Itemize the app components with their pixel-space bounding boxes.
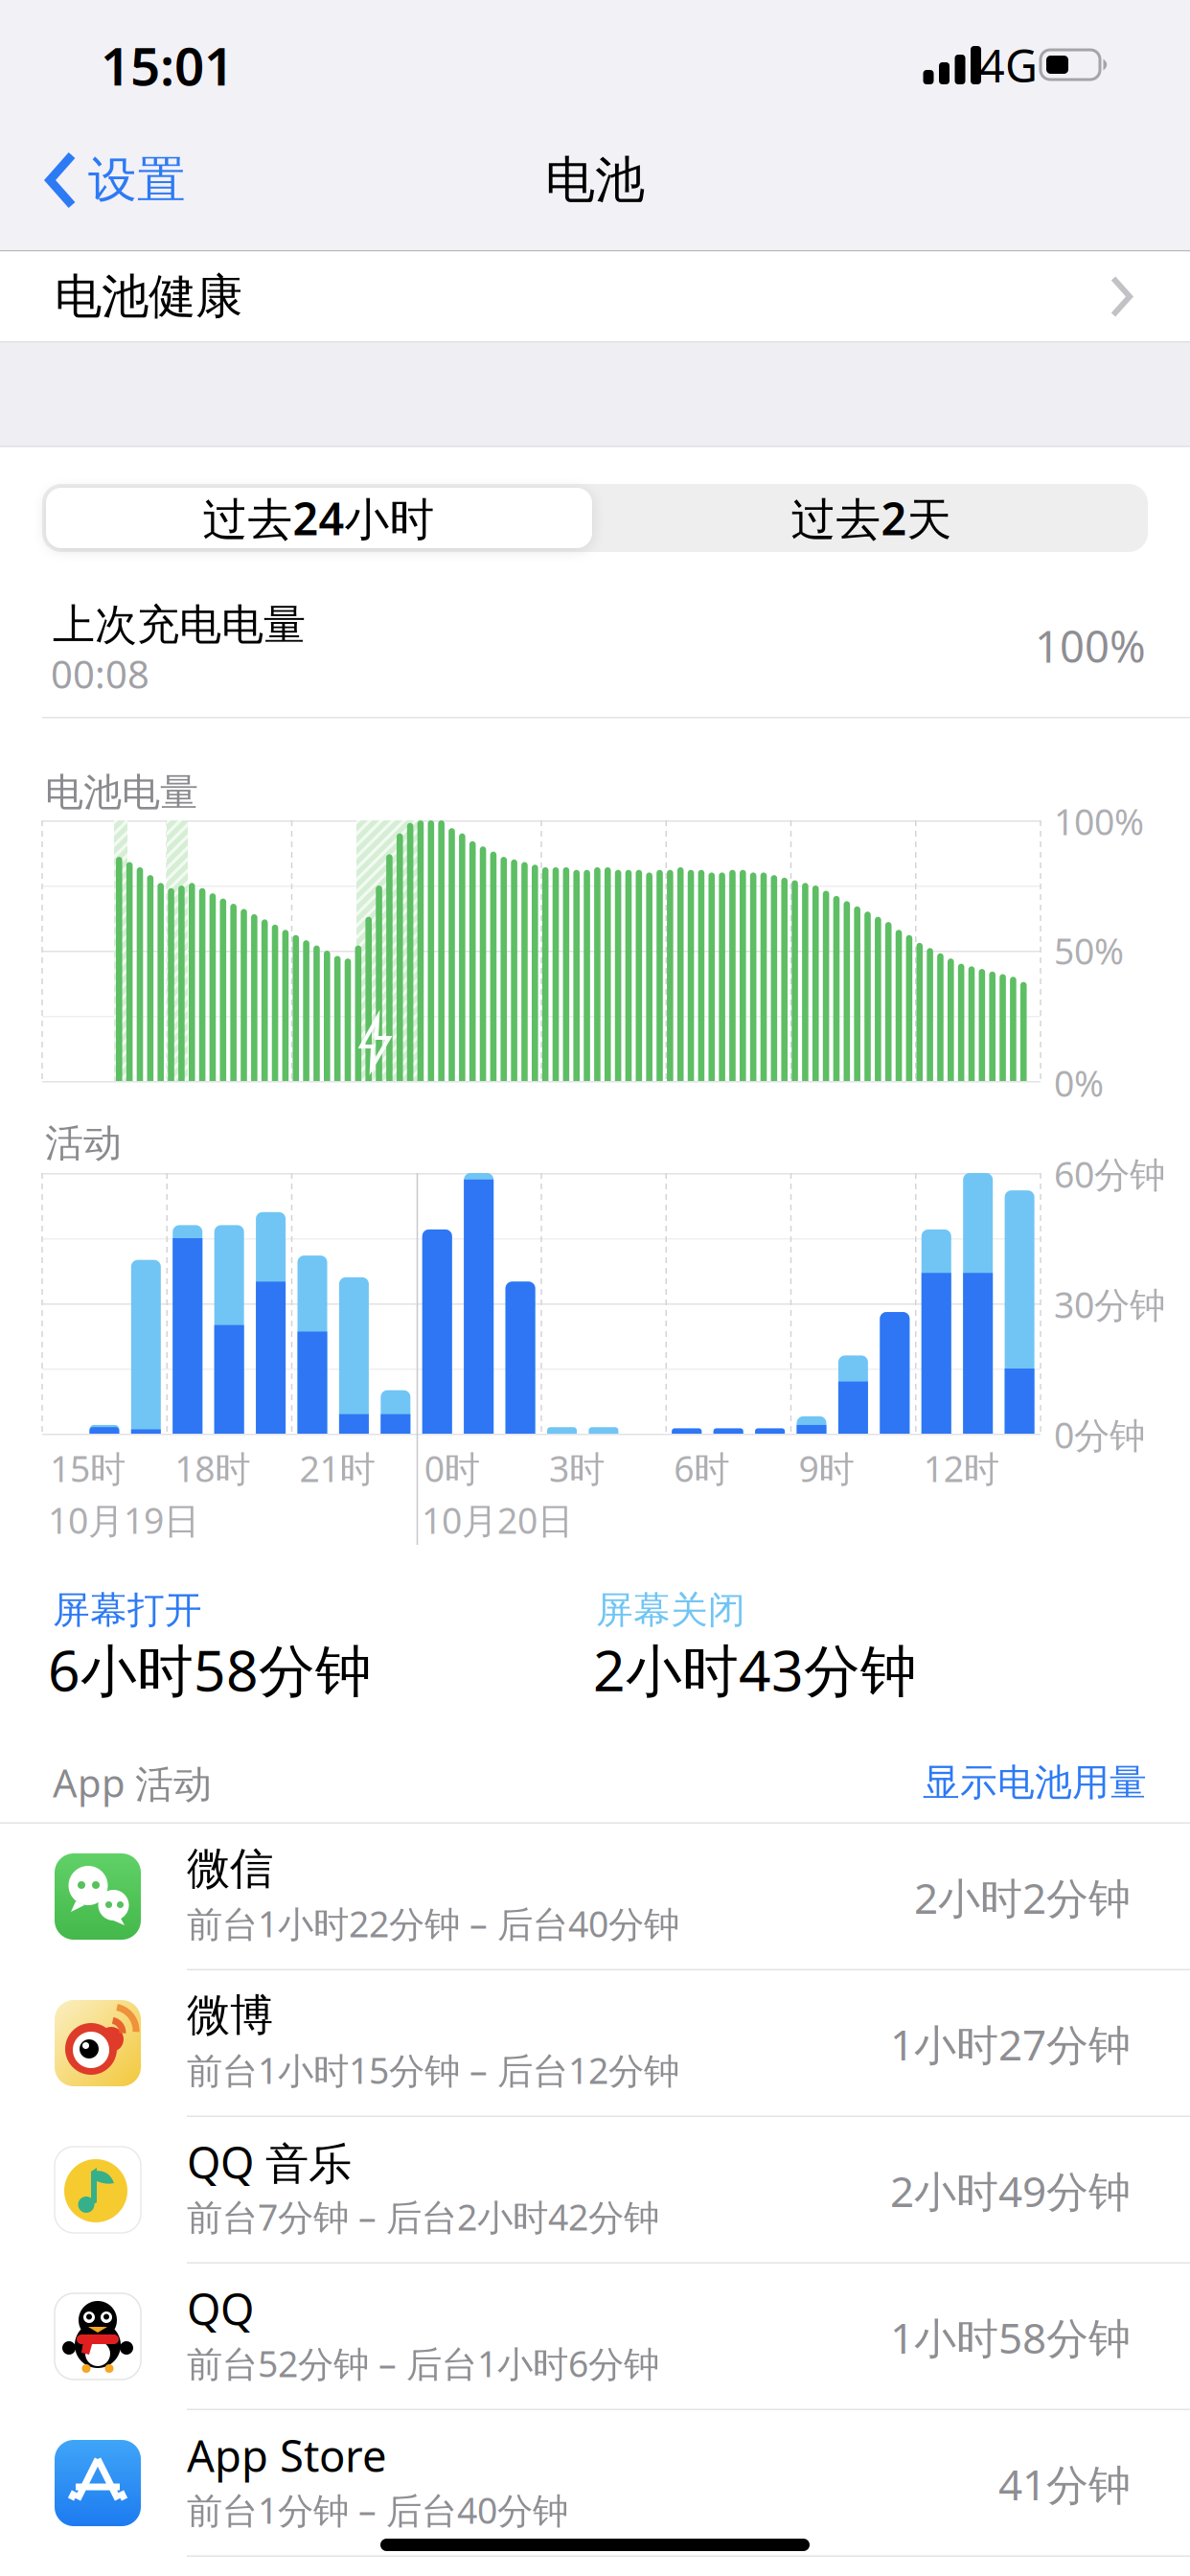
staticText: 前台7分钟 – 后台2小时42分钟	[187, 2193, 659, 2240]
staticText: 12时	[923, 1444, 999, 1492]
staticText: 100%	[1054, 798, 1144, 845]
staticText: QQ	[187, 2280, 254, 2337]
staticText: 1小时58分钟	[890, 2309, 1131, 2365]
staticText: 9时	[799, 1444, 854, 1492]
staticText: 6时	[674, 1444, 729, 1492]
staticText: App Store	[187, 2426, 387, 2484]
staticText: 显示电池用量	[923, 1760, 1147, 1805]
staticText: 100%	[1035, 617, 1146, 675]
staticText: 41分钟	[998, 2456, 1131, 2512]
staticText: 3时	[549, 1444, 605, 1492]
staticText: 2小时2分钟	[914, 1870, 1131, 1925]
staticText: 0%	[1054, 1059, 1104, 1107]
staticText: 前台1分钟 – 后台40分钟	[187, 2486, 568, 2534]
staticText: 上次充电电量	[53, 599, 306, 651]
staticText: App 活动	[53, 1757, 212, 1808]
staticText: 过去2天	[791, 488, 952, 548]
staticText: 活动	[45, 1120, 122, 1167]
staticText: 过去24小时	[203, 488, 435, 548]
button[interactable]: QQ	[0, 2264, 1190, 2410]
staticText: 电池	[545, 150, 645, 211]
staticText: 18时	[175, 1444, 250, 1492]
staticText: 15:01	[101, 30, 234, 100]
staticText: 60分钟	[1054, 1150, 1165, 1198]
staticText: 10月20日	[422, 1496, 573, 1544]
staticText: 30分钟	[1054, 1281, 1165, 1328]
staticText: 6小时58分钟	[48, 1632, 372, 1707]
staticText: 前台52分钟 – 后台1小时6分钟	[187, 2339, 659, 2387]
staticText: 4G	[979, 35, 1038, 95]
button[interactable]: 微信	[0, 1824, 1190, 1970]
staticText: 电池健康	[55, 268, 242, 326]
button[interactable]: App Store	[0, 2410, 1190, 2557]
staticText: 0时	[424, 1444, 480, 1492]
staticText: 0分钟	[1054, 1411, 1145, 1458]
staticText: 10月19日	[48, 1496, 199, 1544]
staticText: 21时	[299, 1444, 375, 1492]
button[interactable]: 设置	[46, 137, 276, 223]
staticText: 2小时43分钟	[593, 1632, 917, 1707]
button[interactable]: 微博	[0, 1970, 1190, 2117]
staticText: 前台1小时15分钟 – 后台12分钟	[187, 2046, 679, 2094]
staticText: 屏幕关闭	[596, 1587, 745, 1633]
staticText: 1小时27分钟	[890, 2016, 1131, 2072]
staticText: 15时	[50, 1444, 126, 1492]
staticText: 00:08	[51, 648, 149, 699]
staticText: 微信	[187, 1842, 273, 1895]
staticText: 电池电量	[45, 769, 198, 816]
button[interactable]: QQ 音乐	[0, 2117, 1190, 2264]
button[interactable]: 过去24小时	[42, 484, 595, 552]
staticText: 前台1小时22分钟 – 后台40分钟	[187, 1900, 679, 1947]
staticText: 2小时49分钟	[890, 2163, 1131, 2219]
staticText: 设置	[88, 150, 186, 210]
staticText: 50%	[1054, 927, 1124, 974]
staticText: 微博	[187, 1989, 273, 2042]
button[interactable]: 电池健康	[0, 252, 1190, 342]
staticText: QQ 音乐	[187, 2133, 352, 2191]
staticText: 屏幕打开	[53, 1587, 202, 1633]
button[interactable]: 过去2天	[595, 484, 1148, 552]
